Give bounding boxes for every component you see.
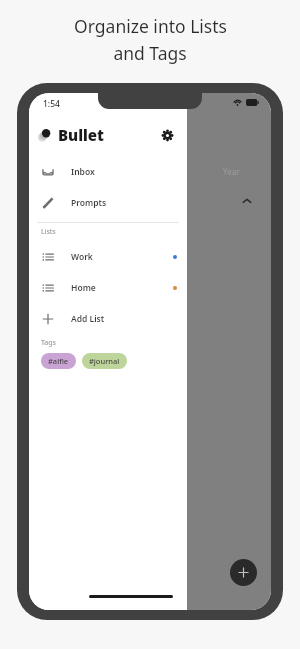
staticText: Home xyxy=(71,282,96,294)
staticText: #alfie xyxy=(48,356,69,366)
staticText: Tags xyxy=(41,338,56,348)
staticText: Organize into Lists xyxy=(74,14,227,38)
staticText: Lists xyxy=(41,227,56,237)
staticText: Add List xyxy=(71,313,105,325)
button[interactable]: Work xyxy=(29,241,187,272)
staticText: Work xyxy=(71,251,93,263)
button[interactable]: Prompts xyxy=(29,187,187,218)
button[interactable]: #alfie xyxy=(41,353,76,369)
staticText: and Tags xyxy=(113,41,187,65)
button[interactable]: #journal xyxy=(82,353,127,369)
staticText: 1:54 xyxy=(43,98,60,110)
staticText: Inbox xyxy=(71,166,95,178)
button[interactable]: Settings xyxy=(157,125,177,145)
staticText: Year xyxy=(223,166,240,177)
staticText: #journal xyxy=(89,356,120,366)
staticText: Prompts xyxy=(71,197,107,209)
button[interactable]: Home xyxy=(29,272,187,303)
staticText: Bullet xyxy=(58,125,105,145)
button[interactable]: Collapse xyxy=(239,193,255,209)
button[interactable]: Inbox xyxy=(29,156,187,187)
button[interactable]: Add List xyxy=(29,303,187,334)
button[interactable]: Add entry xyxy=(230,559,257,586)
